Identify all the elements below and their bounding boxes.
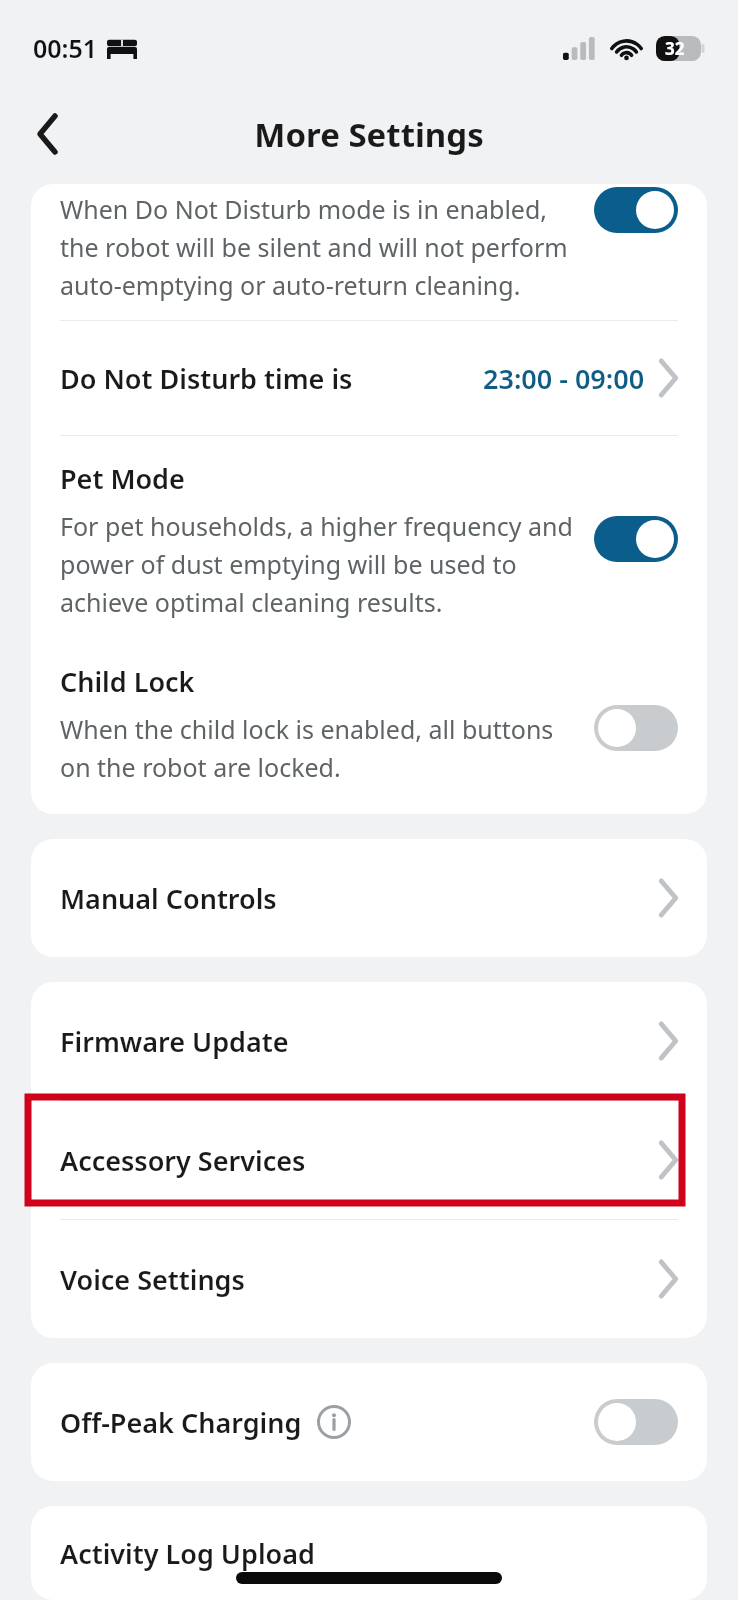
button[interactable]: Toggle off <box>594 705 678 751</box>
button[interactable]: Toggle on <box>594 516 678 562</box>
button[interactable]: Voice Settings <box>31 1220 707 1338</box>
button[interactable]: Information <box>316 1404 352 1440</box>
button[interactable]: Activity Log Upload <box>31 1506 707 1600</box>
button[interactable]: Toggle on <box>594 187 678 233</box>
staticText: 23:00 - 09:00 <box>483 360 645 397</box>
button[interactable]: Pet Mode <box>31 436 707 641</box>
staticText: Manual Controls <box>60 880 277 917</box>
button[interactable]: Toggle off <box>594 1399 678 1445</box>
staticText: Do Not Disturb time is <box>60 360 353 397</box>
button[interactable]: Off-Peak Charging <box>31 1363 707 1481</box>
staticText: When Do Not Disturb mode is in enabled, … <box>60 192 568 302</box>
button[interactable]: When Do Not Disturb mode is in enabled, … <box>31 184 707 320</box>
staticText: Activity Log Upload <box>60 1535 315 1572</box>
button[interactable]: Firmware Update <box>31 982 707 1100</box>
button[interactable]: Do Not Disturb time is <box>31 321 707 435</box>
staticText: Firmware Update <box>60 1023 289 1060</box>
staticText: For pet households, a higher frequency a… <box>60 509 573 619</box>
staticText: Child Lock <box>60 663 195 700</box>
staticText: 32 <box>665 37 685 60</box>
button[interactable]: Child Lock <box>31 641 707 814</box>
button[interactable]: Manual Controls <box>31 839 707 957</box>
staticText: Pet Mode <box>60 460 185 497</box>
button[interactable]: Back <box>20 106 76 162</box>
staticText: Off-Peak Charging <box>60 1404 302 1441</box>
staticText: When the child lock is enabled, all butt… <box>60 712 554 784</box>
staticText: Voice Settings <box>60 1261 245 1298</box>
staticText: Accessory Services <box>60 1142 306 1179</box>
button[interactable]: Accessory Services <box>31 1101 707 1219</box>
staticText: 00:51 <box>33 31 98 65</box>
staticText: More Settings <box>254 112 484 157</box>
